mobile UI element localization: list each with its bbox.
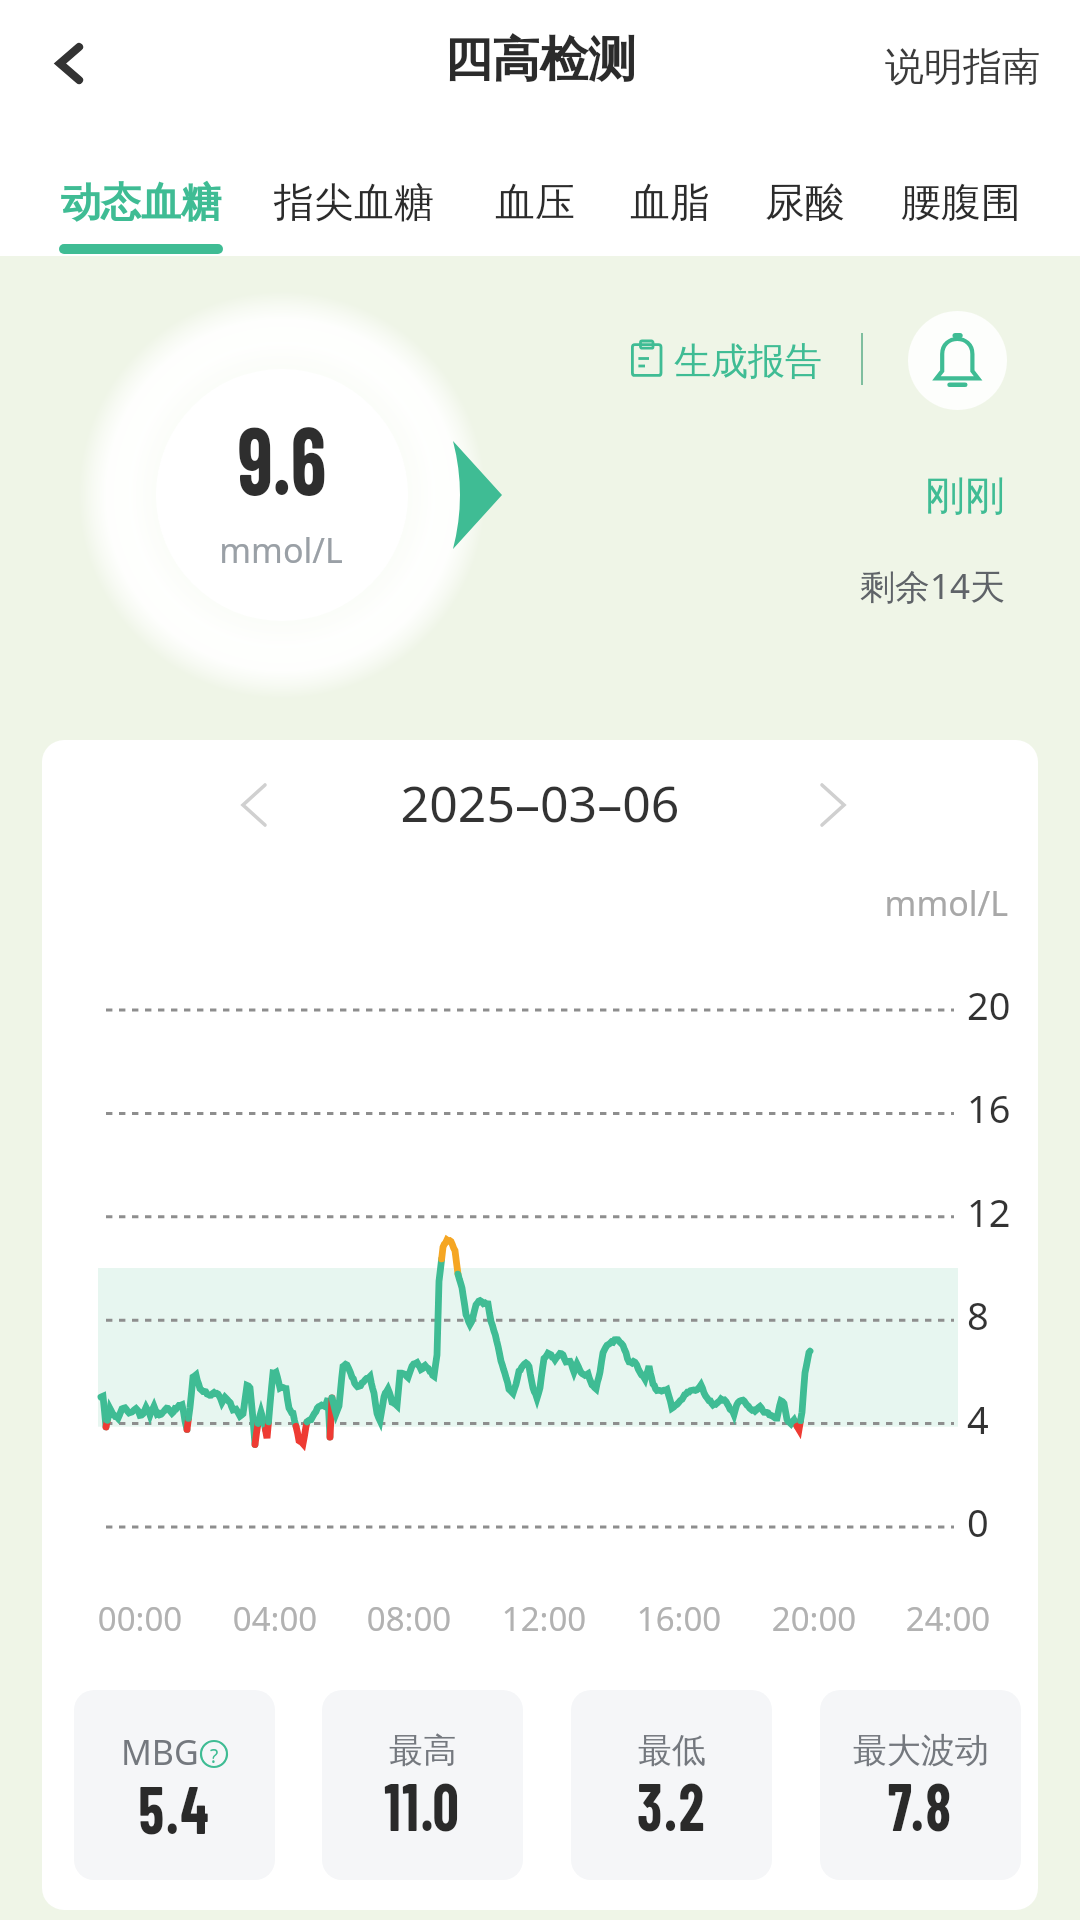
staticText: 指尖血糖 <box>274 177 434 227</box>
staticText: 最低 <box>638 1729 706 1772</box>
staticText: 4 <box>967 1393 1037 1445</box>
staticText: 生成报告 <box>674 338 822 382</box>
staticText: 2025–03–06 <box>246 769 834 837</box>
button[interactable]: 动态血糖 <box>47 160 235 256</box>
button[interactable]: 血压 <box>482 160 588 256</box>
staticText: 08:00 <box>339 1596 479 1641</box>
staticText: 04:00 <box>205 1596 345 1641</box>
staticText: 16 <box>967 1082 1037 1134</box>
button[interactable]: Next day <box>801 770 861 830</box>
staticText: mmol/L <box>146 527 416 573</box>
button[interactable]: 腰腹围 <box>887 160 1034 256</box>
button[interactable]: 最大波动 <box>820 1690 1021 1880</box>
staticText: 8 <box>967 1289 1037 1341</box>
staticText: ? <box>199 1743 229 1773</box>
staticText: 四高检测 <box>444 30 636 90</box>
staticText: 最高 <box>389 1729 457 1772</box>
staticText: 0 <box>967 1496 1037 1548</box>
staticText: 5.4 <box>86 1768 263 1847</box>
staticText: 尿酸 <box>765 177 845 227</box>
staticText: 刚刚 <box>845 470 1005 520</box>
staticText: 动态血糖 <box>61 177 221 227</box>
staticText: 12 <box>967 1186 1037 1238</box>
button[interactable]: 最低 <box>571 1690 772 1880</box>
staticText: 血压 <box>495 177 575 227</box>
staticText: 11.0 <box>334 1765 511 1844</box>
staticText: 20:00 <box>744 1596 884 1641</box>
staticText: 7.8 <box>832 1765 1009 1844</box>
staticText: 12:00 <box>474 1596 614 1641</box>
staticText: 3.2 <box>583 1765 760 1844</box>
staticText: 20 <box>967 979 1037 1031</box>
staticText: 16:00 <box>609 1596 749 1641</box>
button[interactable]: 指尖血糖 <box>260 160 448 256</box>
button[interactable]: 生成报告 <box>631 338 822 382</box>
button[interactable]: Notifications <box>908 311 1007 410</box>
button[interactable]: Previous day <box>226 770 286 830</box>
button[interactable]: 血脂 <box>617 160 723 256</box>
staticText: 9.6 <box>169 399 395 514</box>
button[interactable]: 尿酸 <box>752 160 858 256</box>
staticText: 腰腹围 <box>901 177 1021 227</box>
button[interactable]: 说明指南 <box>885 42 1041 91</box>
staticText: 血脂 <box>630 177 710 227</box>
button[interactable]: 最高 <box>322 1690 523 1880</box>
button[interactable]: MBG <box>74 1690 275 1880</box>
staticText: 最大波动 <box>853 1729 989 1772</box>
staticText: 24:00 <box>878 1596 1018 1641</box>
button[interactable]: Back <box>26 32 86 92</box>
staticText: 剩余14天 <box>845 562 1005 610</box>
staticText: mmol/L <box>742 880 1008 926</box>
staticText: 00:00 <box>70 1596 210 1641</box>
staticText: MBG <box>121 1729 199 1775</box>
